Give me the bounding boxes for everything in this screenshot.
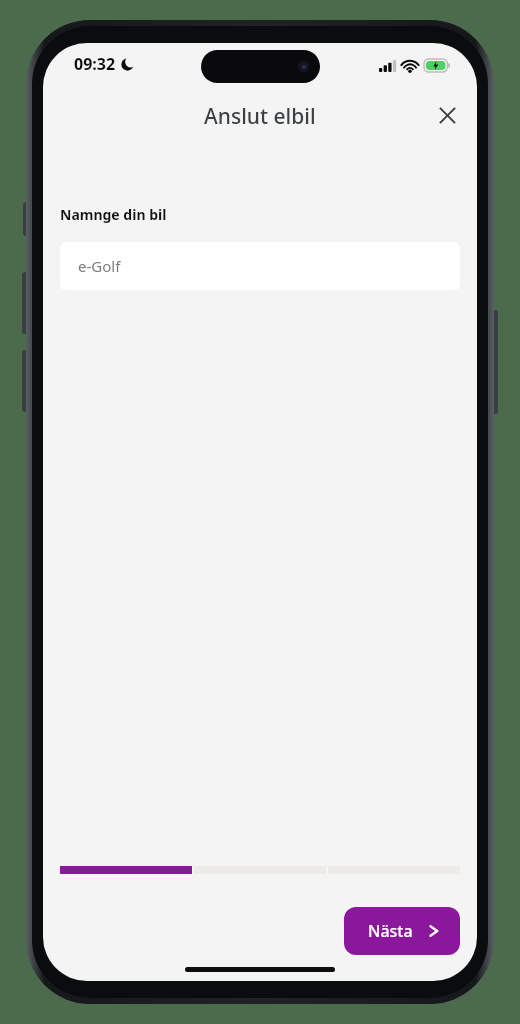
staticText: Anslut elbil [204, 102, 316, 131]
button[interactable]: Stäng [425, 93, 469, 137]
button[interactable]: Nästa [344, 907, 460, 955]
staticText: Nästa [368, 920, 413, 942]
staticText: 09:32 [74, 53, 116, 75]
staticText: e-Golf [78, 256, 121, 276]
staticText: Namnge din bil [60, 205, 167, 224]
button[interactable]: e-Golf [60, 242, 460, 290]
